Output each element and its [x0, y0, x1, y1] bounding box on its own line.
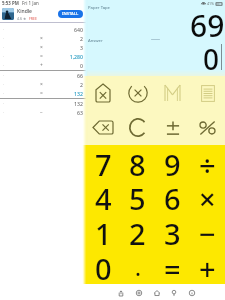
button[interactable]: Settings [133, 287, 144, 298]
button[interactable]: · [0, 61, 86, 70]
staticText: ÷ [199, 145, 216, 179]
button[interactable]: · [0, 52, 86, 61]
staticText: 2 [80, 35, 83, 42]
staticText: · [3, 36, 5, 41]
staticText: · [3, 110, 5, 115]
staticText: 132 [74, 100, 83, 107]
button[interactable]: · [0, 80, 86, 89]
staticText: 9 [164, 145, 181, 179]
staticText: = [164, 249, 181, 284]
button[interactable]: · [0, 99, 86, 108]
staticText: × [40, 44, 43, 51]
button[interactable]: 5 [120, 179, 155, 214]
button[interactable]: 8 [120, 145, 155, 179]
button[interactable]: 0 [86, 249, 120, 284]
button[interactable]: · [0, 34, 86, 43]
button[interactable]: MemClear [86, 76, 120, 110]
staticText: 2 [80, 81, 83, 88]
staticText: − [199, 214, 216, 249]
button[interactable]: Plus minus [155, 110, 190, 145]
staticText: 132 [74, 90, 83, 97]
staticText: 0 [95, 249, 112, 284]
staticText: · [3, 91, 5, 96]
staticText: 63 [77, 109, 83, 116]
button[interactable]: = [155, 249, 190, 284]
button[interactable]: Backspace [86, 110, 120, 145]
staticText: 640 [74, 26, 83, 33]
staticText: × [40, 35, 43, 42]
staticText: INSTALL [62, 11, 79, 17]
staticText: 1 [95, 214, 112, 249]
staticText: 5:53 PM [2, 0, 19, 6]
staticText: · [3, 54, 5, 59]
button[interactable]: × [190, 179, 225, 214]
staticText: = [40, 53, 43, 60]
staticText: . [135, 252, 141, 282]
button[interactable]: · [0, 25, 86, 34]
staticText: 0 [203, 40, 220, 76]
staticText: 4 [95, 179, 112, 214]
button[interactable]: 2 [120, 214, 155, 249]
button[interactable]: Tips [168, 287, 179, 298]
button[interactable]: · [0, 89, 86, 98]
button[interactable]: Home [151, 287, 162, 298]
button[interactable]: ÷ [190, 145, 225, 179]
staticText: 6 [164, 179, 181, 214]
staticText: = [40, 90, 43, 97]
button[interactable]: 3 [155, 214, 190, 249]
button[interactable]: · [0, 108, 86, 117]
staticText: 3 [164, 214, 181, 249]
button[interactable]: 1 [86, 214, 120, 249]
button[interactable]: Percent [190, 110, 225, 145]
staticText: · [3, 101, 5, 106]
button[interactable]: INSTALL [58, 10, 83, 18]
staticText: 2 [129, 214, 146, 249]
staticText: + [199, 249, 216, 284]
staticText: × [199, 179, 216, 214]
staticText: FREE [29, 16, 38, 21]
staticText: − [40, 109, 43, 116]
button[interactable]: · [0, 43, 86, 52]
button[interactable]: . [120, 249, 155, 284]
staticText: 66 [77, 72, 83, 79]
button[interactable]: Info [186, 287, 197, 298]
staticText: · [3, 73, 5, 78]
staticText: Answer [88, 38, 103, 44]
staticText: 4.6 ★ [17, 16, 27, 21]
staticText: 0 [80, 62, 83, 69]
staticText: Kindle [17, 8, 32, 15]
staticText: 41% [207, 1, 215, 6]
button[interactable]: 7 [86, 145, 120, 179]
button[interactable]: Kindle [0, 6, 86, 22]
staticText: · [3, 82, 5, 87]
button[interactable]: 6 [155, 179, 190, 214]
staticText: 8 [129, 145, 146, 179]
button[interactable]: Clear entry [120, 76, 155, 110]
button[interactable]: Share [115, 287, 126, 298]
button[interactable]: · [0, 71, 86, 80]
button[interactable]: Paper Tape [88, 5, 110, 11]
button[interactable]: 9 [155, 145, 190, 179]
button[interactable]: History [190, 76, 225, 110]
button[interactable]: − [190, 214, 225, 249]
staticText: · [3, 27, 5, 32]
button[interactable]: Clear [120, 110, 155, 145]
staticText: + [40, 62, 43, 69]
staticText: 1,280 [69, 53, 83, 60]
staticText: Fri 1 Jan [22, 0, 39, 6]
staticText: 3 [80, 44, 83, 51]
staticText: · [3, 45, 5, 50]
button[interactable]: + [190, 249, 225, 284]
staticText: · [3, 63, 5, 68]
staticText: 5 [129, 179, 146, 214]
staticText: 7 [95, 145, 112, 179]
staticText: × [40, 81, 43, 88]
button[interactable]: 4 [86, 179, 120, 214]
staticText: 69 [190, 5, 225, 46]
button[interactable]: Memory [155, 76, 190, 110]
